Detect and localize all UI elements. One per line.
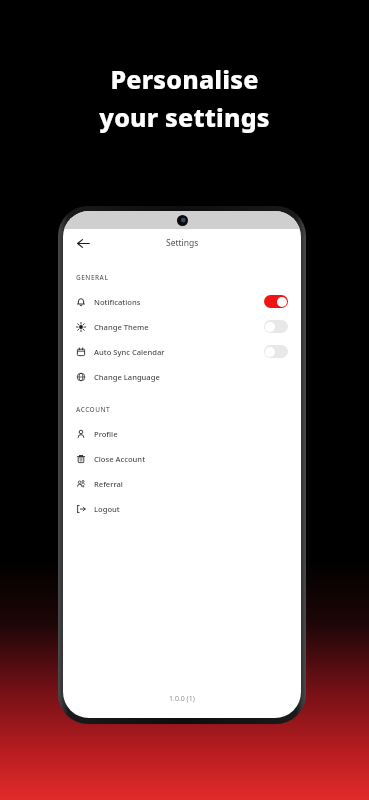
button[interactable]: Close Account — [63, 446, 301, 471]
staticText: Close Account — [94, 454, 146, 464]
button[interactable]: Change Language — [63, 364, 301, 389]
staticText: Change Language — [94, 372, 160, 382]
staticText: Change Theme — [94, 322, 149, 332]
button[interactable]: Notifications toggle — [264, 295, 288, 308]
staticText: Logout — [94, 504, 120, 514]
staticText: Notifications — [94, 297, 141, 307]
staticText: your settings — [99, 100, 270, 134]
button[interactable]: Auto Sync Calendar toggle — [264, 345, 288, 358]
staticText: 1.0.0 (1) — [169, 694, 195, 704]
staticText: GENERAL — [76, 273, 109, 282]
staticText: Profile — [94, 429, 118, 439]
button[interactable]: Logout — [63, 496, 301, 521]
staticText: Referral — [94, 479, 123, 489]
button[interactable]: Auto Sync Calendar — [63, 339, 301, 364]
staticText: Personalise — [110, 62, 259, 96]
staticText: Auto Sync Calendar — [94, 347, 165, 357]
button[interactable]: Referral — [63, 471, 301, 496]
staticText: Settings — [166, 237, 199, 249]
staticText: ACCOUNT — [76, 405, 111, 414]
button[interactable]: Back — [71, 231, 95, 255]
button[interactable]: Notifications — [63, 289, 301, 314]
button[interactable]: Change Theme toggle — [264, 320, 288, 333]
button[interactable]: Change Theme — [63, 314, 301, 339]
button[interactable]: Profile — [63, 421, 301, 446]
